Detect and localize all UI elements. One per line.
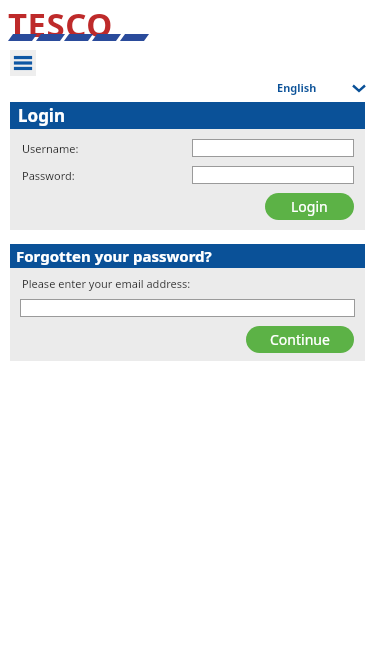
staticText: Login (18, 104, 66, 127)
button[interactable]: Email address field (20, 299, 355, 317)
staticText: Login (291, 197, 328, 216)
staticText: Forgotten your password? (16, 246, 212, 266)
button[interactable]: English (277, 80, 365, 95)
button[interactable]: Username: (192, 139, 354, 157)
staticText: Username: (22, 141, 192, 156)
button[interactable]: Menu (10, 50, 36, 76)
button[interactable]: Login (265, 193, 354, 220)
button[interactable]: Password: (192, 166, 354, 184)
staticText: TESCO (8, 2, 113, 44)
staticText: Password: (22, 168, 192, 183)
staticText: English (277, 80, 317, 95)
button[interactable]: Continue (246, 326, 354, 353)
staticText: Continue (270, 330, 330, 349)
staticText: Please enter your email address: (22, 276, 191, 291)
